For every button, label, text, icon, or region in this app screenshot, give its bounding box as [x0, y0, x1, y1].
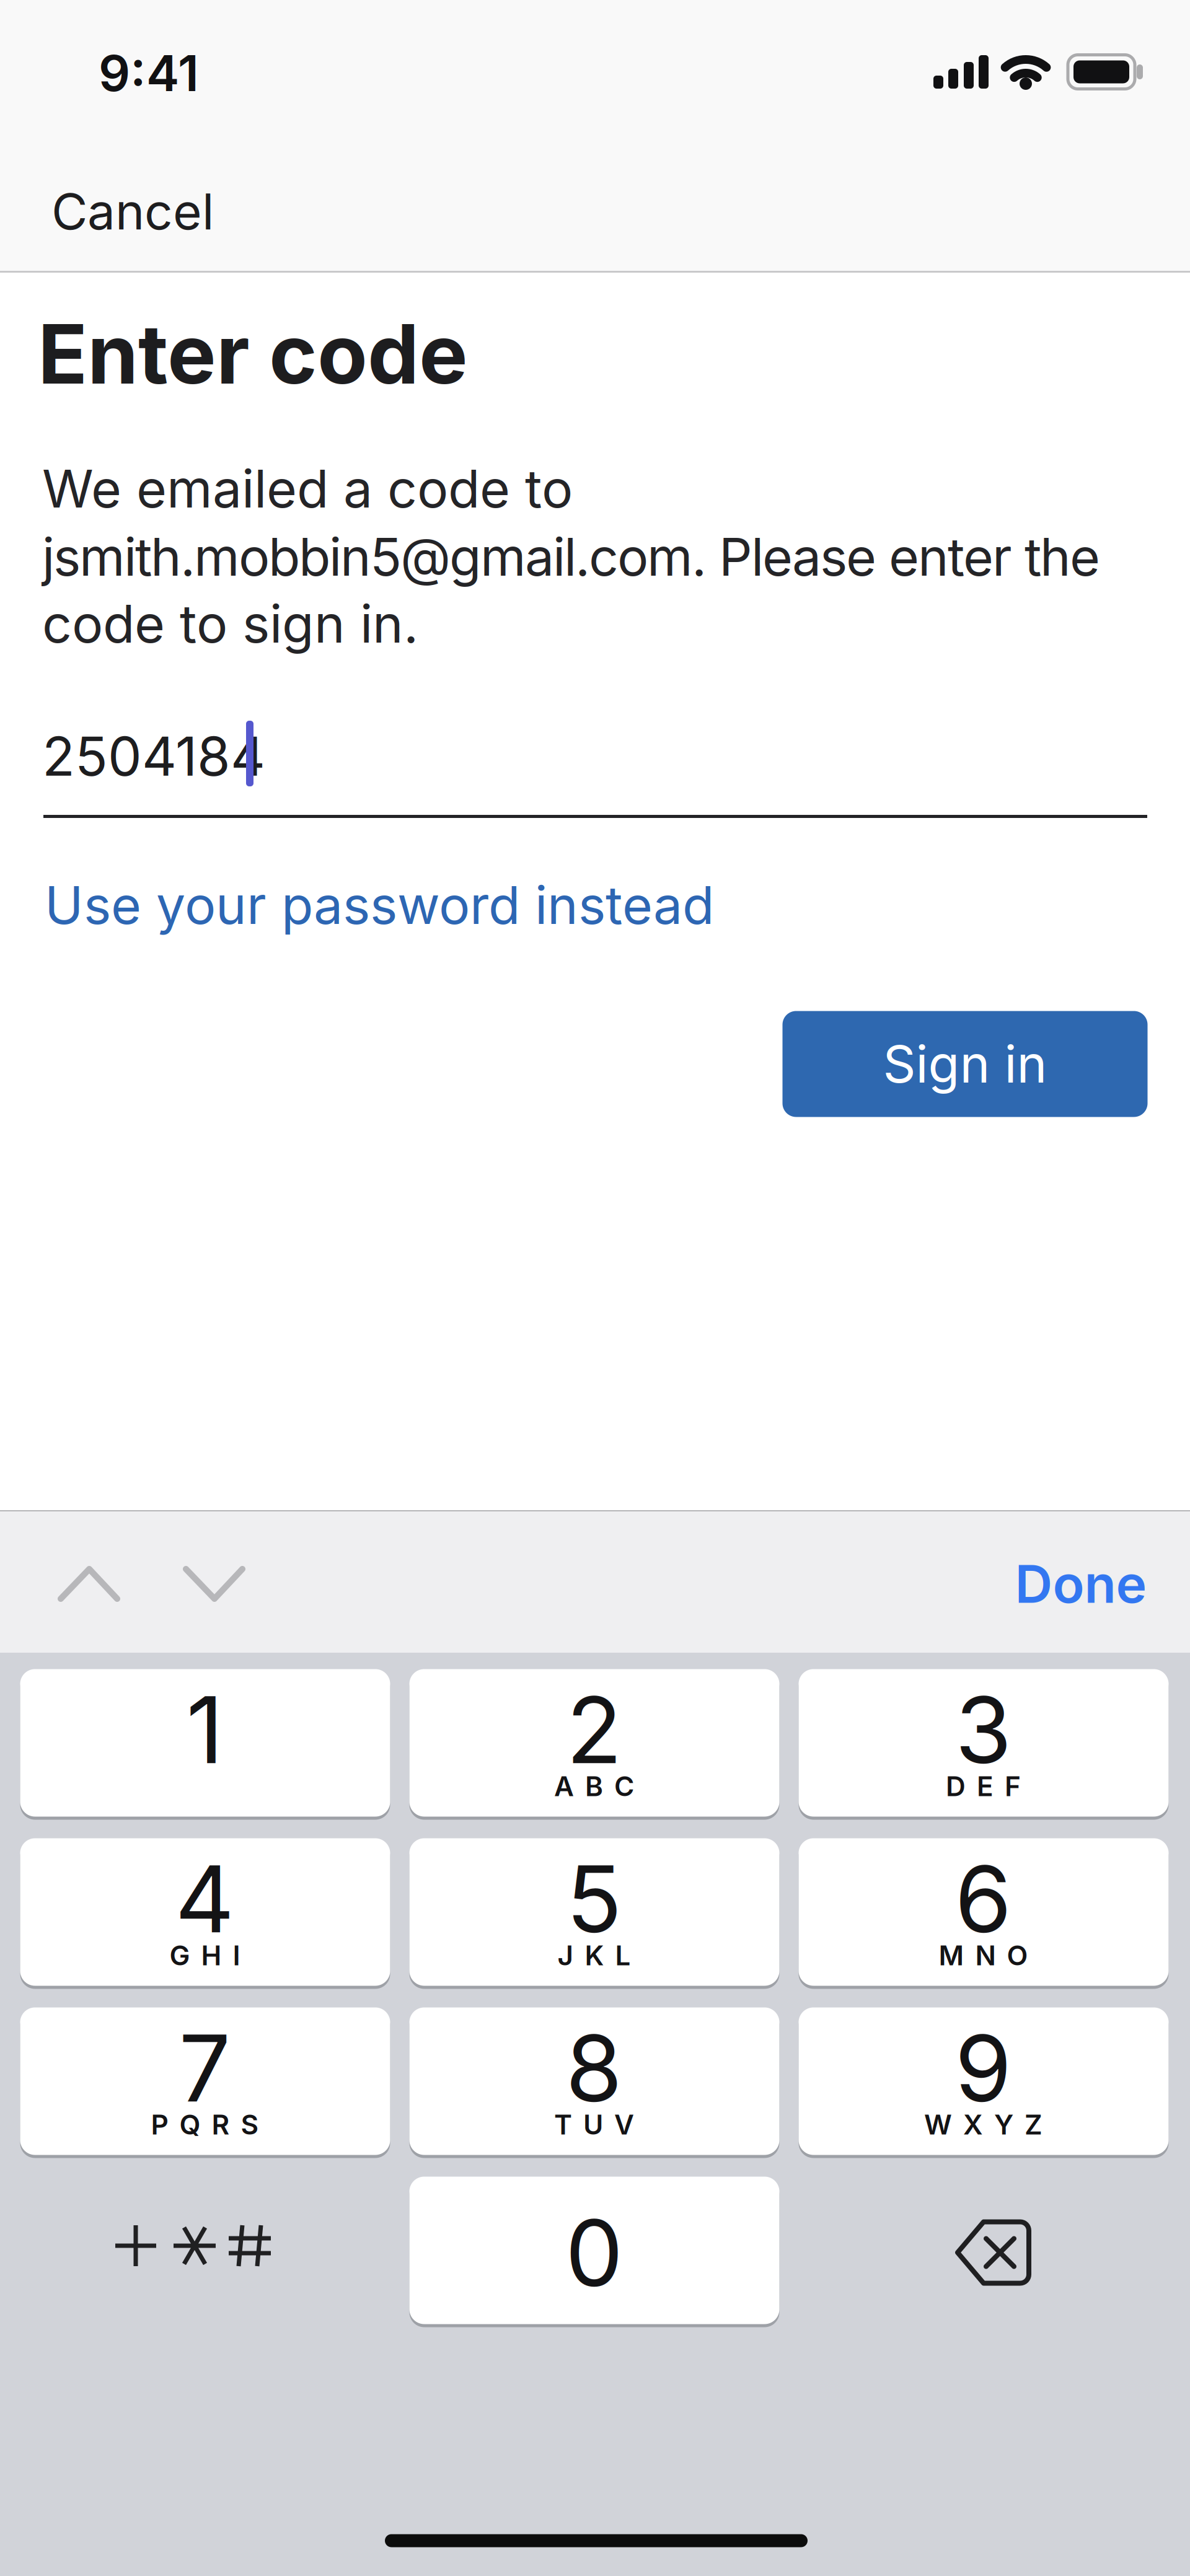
- button[interactable]: 1: [20, 1669, 390, 1820]
- staticText: DEF: [946, 1770, 1021, 1802]
- staticText: TUV: [554, 2108, 634, 2141]
- button[interactable]: 8: [409, 2007, 779, 2158]
- button[interactable]: 5: [409, 1838, 779, 1989]
- staticText: WXYZ: [924, 2108, 1042, 2141]
- staticText: 4: [175, 1845, 235, 1953]
- staticText: GHI: [170, 1939, 240, 1971]
- button[interactable]: 7: [20, 2007, 390, 2158]
- button[interactable]: 3: [799, 1669, 1169, 1820]
- staticText: ABC: [554, 1770, 634, 1802]
- staticText: 0: [565, 2199, 623, 2307]
- button[interactable]: Code: [43, 713, 1147, 818]
- staticText: 1: [186, 1676, 223, 1784]
- staticText: jsmith.mobbin5@gmail.com. Please enter t…: [42, 526, 1100, 588]
- staticText: 9: [955, 2014, 1012, 2122]
- staticText: Enter code: [38, 306, 468, 402]
- button[interactable]: 6: [799, 1838, 1169, 1989]
- button[interactable]: Sign in: [782, 1011, 1148, 1117]
- staticText: 9:41: [99, 44, 199, 102]
- button[interactable]: 0: [409, 2177, 779, 2327]
- staticText: 7: [179, 2014, 231, 2122]
- staticText: PQRS: [151, 2108, 259, 2141]
- staticText: Done: [1015, 1553, 1147, 1615]
- button[interactable]: 9: [799, 2007, 1169, 2158]
- button[interactable]: Delete: [956, 2221, 1033, 2286]
- staticText: Use your password instead: [45, 874, 714, 936]
- button[interactable]: Done: [1015, 1553, 1147, 1615]
- staticText: 8: [566, 2014, 623, 2122]
- button[interactable]: Symbols + * #: [105, 2206, 291, 2285]
- button[interactable]: Cancel: [51, 182, 214, 241]
- staticText: 2504184: [42, 724, 265, 788]
- staticText: JKL: [558, 1939, 631, 1971]
- button[interactable]: 4: [20, 1838, 390, 1989]
- staticText: We emailed a code to: [42, 458, 573, 519]
- staticText: 5: [566, 1845, 622, 1953]
- staticText: 6: [955, 1845, 1012, 1953]
- staticText: 3: [955, 1676, 1011, 1784]
- button[interactable]: Previous field: [55, 1564, 123, 1604]
- button[interactable]: Next field: [180, 1564, 248, 1604]
- staticText: Sign in: [883, 1034, 1047, 1094]
- staticText: 2: [566, 1676, 622, 1784]
- button[interactable]: Use your password instead: [45, 874, 714, 936]
- button[interactable]: 2: [409, 1669, 779, 1820]
- staticText: code to sign in.: [42, 593, 418, 654]
- staticText: MNO: [939, 1939, 1028, 1971]
- staticText: Cancel: [51, 182, 214, 241]
